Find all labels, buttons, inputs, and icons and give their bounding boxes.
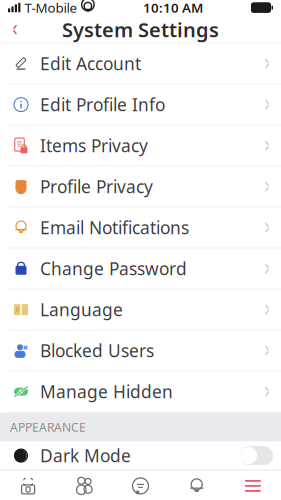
staticText: APPEARANCE bbox=[10, 419, 86, 435]
button[interactable]: Home bbox=[0, 470, 56, 500]
button[interactable]: Edit Profile Info bbox=[0, 85, 281, 126]
button[interactable]: Back bbox=[4, 17, 26, 43]
button[interactable]: Email Notifications bbox=[0, 208, 281, 249]
button[interactable]: Blocked Users bbox=[0, 331, 281, 372]
button[interactable]: Dark Mode bbox=[0, 442, 281, 470]
staticText: T-Mobile bbox=[24, 0, 77, 16]
staticText: Edit Account bbox=[40, 52, 141, 75]
button[interactable]: Messages bbox=[112, 470, 169, 500]
button[interactable]: Change Password bbox=[0, 249, 281, 290]
staticText: Language bbox=[40, 298, 123, 321]
button[interactable]: Profile Privacy bbox=[0, 167, 281, 208]
button[interactable]: People bbox=[56, 470, 112, 500]
staticText: Dark Mode bbox=[40, 444, 131, 467]
button[interactable]: Items Privacy bbox=[0, 126, 281, 167]
staticText: Manage Hidden bbox=[40, 380, 173, 403]
button[interactable]: Edit Account bbox=[0, 44, 281, 85]
staticText: System Settings bbox=[62, 16, 219, 43]
staticText: Blocked Users bbox=[40, 339, 154, 362]
staticText: Profile Privacy bbox=[40, 175, 153, 198]
button[interactable]: Menu bbox=[225, 470, 281, 500]
staticText: Change Password bbox=[40, 257, 187, 280]
staticText: Email Notifications bbox=[40, 216, 189, 239]
staticText: Edit Profile Info bbox=[40, 93, 165, 116]
button[interactable]: Notifications bbox=[169, 470, 225, 500]
button[interactable]: Language bbox=[0, 290, 281, 331]
button[interactable]: Manage Hidden bbox=[0, 372, 281, 413]
staticText: Items Privacy bbox=[40, 134, 148, 157]
staticText: 10:10 AM bbox=[143, 0, 203, 16]
